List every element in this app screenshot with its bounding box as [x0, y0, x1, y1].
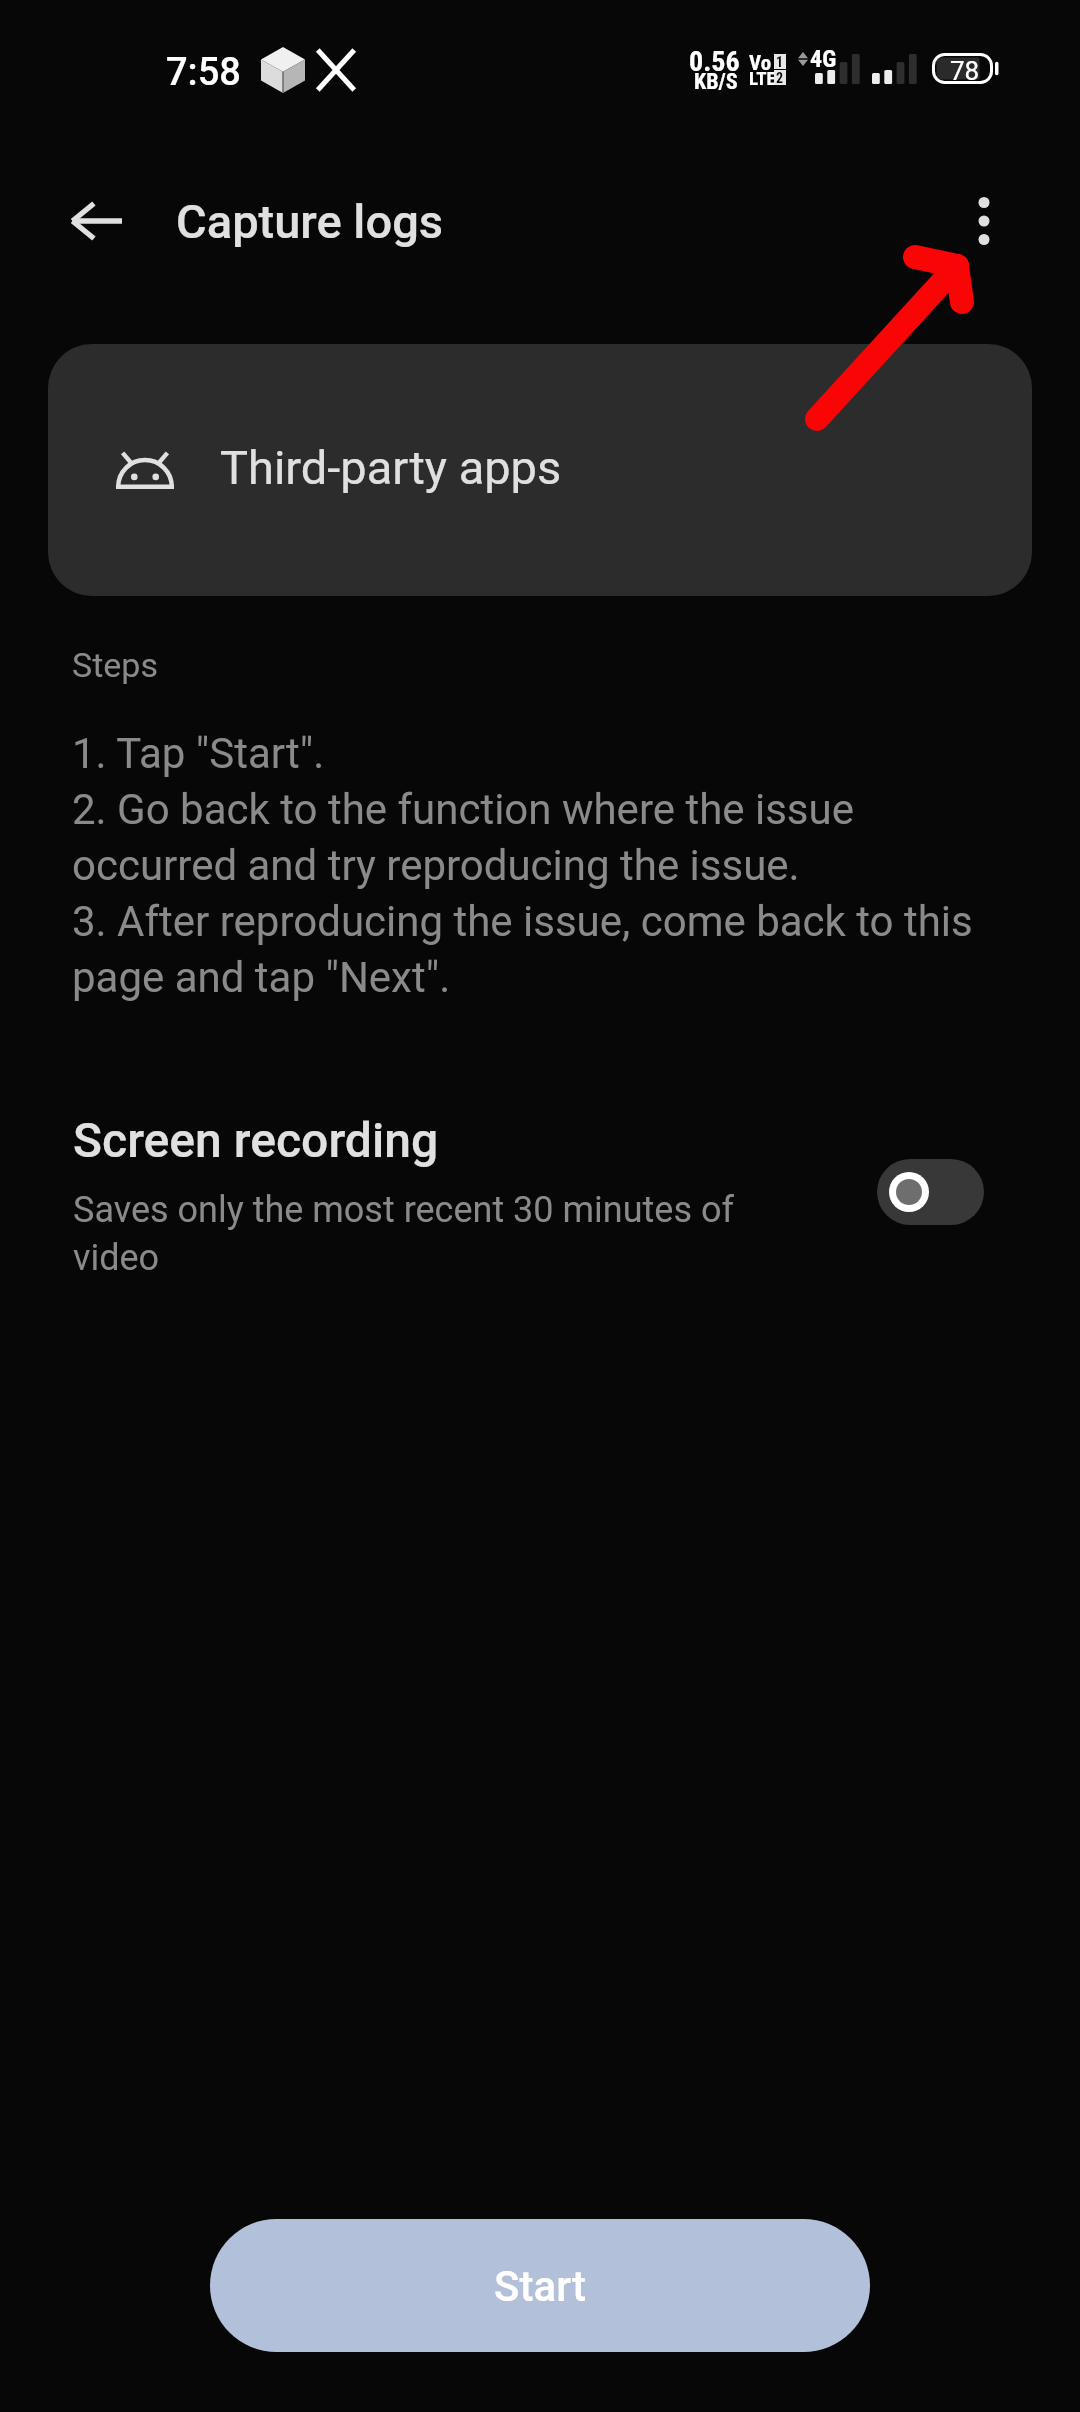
button[interactable]: Start — [210, 2219, 870, 2352]
staticText: 4G — [810, 42, 837, 74]
staticText: KB/S — [694, 66, 738, 95]
button[interactable]: Screen recording — [0, 1100, 1080, 1290]
staticText: 1 — [776, 54, 784, 69]
staticText: 0.56 — [689, 42, 740, 79]
staticText: Saves only the most recent 30 minutes of… — [73, 1184, 763, 1280]
staticText: Screen recording — [73, 1106, 439, 1170]
staticText: LTE — [749, 65, 776, 90]
staticText: Steps — [72, 641, 158, 686]
staticText: 1. Tap "Start". 2. Go back to the functi… — [72, 724, 1002, 1004]
staticText: Capture logs — [176, 188, 444, 251]
staticText: Third-party apps — [220, 434, 562, 497]
staticText: 2 — [776, 70, 784, 85]
button[interactable]: Third-party apps — [48, 344, 1032, 596]
staticText: 7:58 — [166, 45, 241, 96]
button[interactable]: More options — [936, 173, 1032, 269]
button[interactable]: Back — [48, 173, 144, 269]
button[interactable]: Screen recording — [877, 1159, 984, 1225]
staticText: Vo — [749, 48, 772, 76]
staticText: 78 — [950, 52, 980, 87]
staticText: Start — [494, 2261, 586, 2311]
